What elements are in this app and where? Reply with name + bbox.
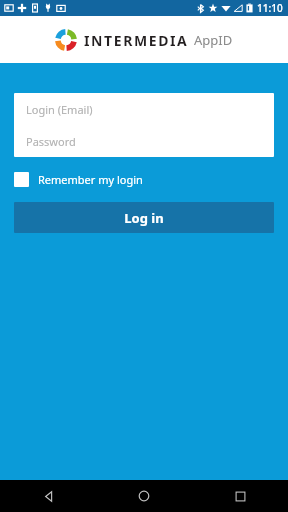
button[interactable]: Back [30, 480, 66, 512]
button[interactable]: Home [126, 480, 162, 512]
button[interactable]: Log in [14, 202, 274, 233]
staticText: INTERMEDIA [84, 31, 189, 50]
staticText: Remember my login [38, 172, 143, 187]
staticText: AppID [194, 31, 233, 49]
button[interactable]: Recent apps [222, 480, 258, 512]
staticText: Login (Email) [26, 102, 93, 117]
staticText: 11:10 [257, 1, 283, 15]
staticText: Password [26, 134, 76, 149]
button[interactable]: Password [14, 125, 274, 157]
button[interactable]: Login (Email) [14, 93, 274, 125]
button[interactable]: Remember my login [14, 169, 274, 190]
staticText: Log in [124, 209, 164, 227]
